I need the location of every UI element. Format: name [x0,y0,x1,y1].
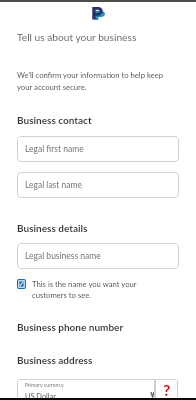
button[interactable]: Help [155,379,178,400]
staticText: ? [163,380,171,399]
staticText: Business phone number [17,321,124,333]
staticText: We'll confirm your information to help k… [17,70,179,92]
button[interactable]: Legal last name [17,172,179,198]
button[interactable]: Legal first name [17,136,179,162]
staticText: US Dollar [25,392,56,400]
staticText: Business address [17,354,93,366]
button[interactable]: Legal business name [17,243,179,269]
staticText: This is the name you want your customers… [32,279,151,300]
staticText: Legal business name [25,251,101,261]
staticText: Legal last name [25,180,82,190]
button[interactable]: Primary currency [17,379,155,400]
staticText: Tell us about your business [17,31,137,43]
staticText: Business details [17,222,88,234]
staticText: Business contact [17,114,92,126]
staticText: Primary currency [25,382,64,388]
staticText: Legal first name [25,144,84,154]
